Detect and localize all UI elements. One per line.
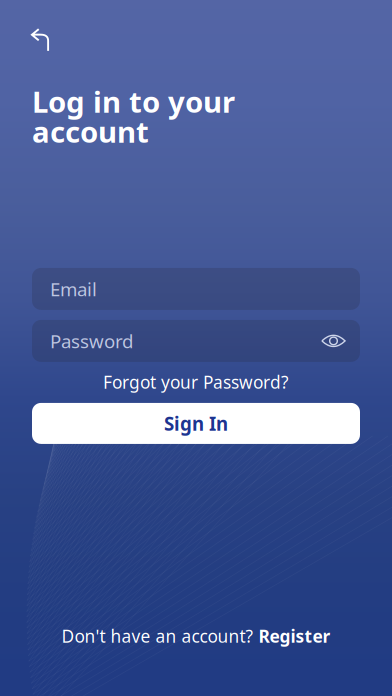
button[interactable]: Show password <box>321 332 346 349</box>
staticText: Password <box>50 328 133 353</box>
staticText: Email <box>50 276 97 301</box>
button[interactable]: Don't have an account? <box>0 624 392 648</box>
staticText: Log in to your <box>32 82 235 121</box>
button[interactable]: Sign In <box>32 403 360 444</box>
button[interactable]: Back <box>18 20 62 60</box>
staticText: Forgot your Password? <box>103 370 289 393</box>
staticText: Sign In <box>164 411 228 436</box>
staticText: account <box>32 112 149 151</box>
staticText: Register <box>258 624 330 647</box>
button[interactable]: Forgot your Password? <box>0 369 392 395</box>
staticText: Don't have an account? <box>61 624 253 647</box>
